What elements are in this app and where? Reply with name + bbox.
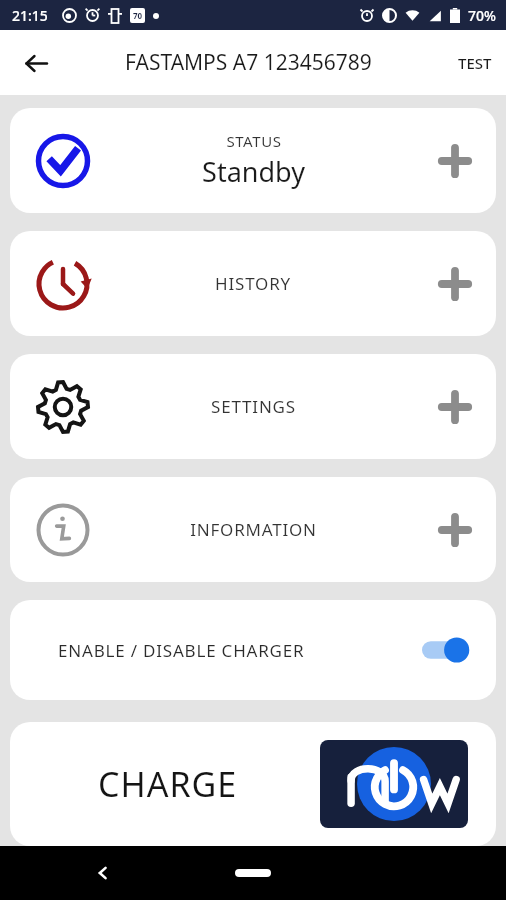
button[interactable]: Expand STATUS	[432, 138, 478, 184]
button[interactable]: Back	[80, 850, 126, 896]
button[interactable]: Back	[12, 39, 60, 87]
button[interactable]: Home	[218, 858, 288, 888]
button[interactable]: ENABLE / DISABLE CHARGER	[10, 600, 496, 700]
staticText: ENABLE / DISABLE CHARGER	[58, 639, 305, 662]
staticText: HISTORY	[215, 272, 291, 295]
button[interactable]: STATUS	[10, 108, 496, 213]
button[interactable]: SETTINGS	[10, 354, 496, 459]
staticText: 70%	[468, 6, 496, 25]
staticText: 70	[133, 10, 143, 21]
staticText: Standby	[202, 153, 305, 190]
staticText: INFORMATION	[190, 518, 317, 541]
button[interactable]: TEST	[444, 43, 506, 83]
button[interactable]: HISTORY	[10, 231, 496, 336]
button[interactable]: Expand SETTINGS	[432, 384, 478, 430]
button[interactable]: Expand INFORMATION	[432, 507, 478, 553]
staticText: STATUS	[226, 131, 282, 151]
button[interactable]: INFORMATION	[10, 477, 496, 582]
button[interactable]: Charge now	[320, 740, 468, 828]
button[interactable]: Enable or disable charger	[422, 633, 474, 667]
staticText: TEST	[458, 53, 492, 73]
staticText: FASTAMPS A7 123456789	[125, 48, 372, 77]
staticText: CHARGE	[98, 761, 238, 807]
staticText: 21:15	[12, 6, 48, 25]
button[interactable]: CHARGE	[10, 722, 496, 846]
staticText: SETTINGS	[211, 395, 296, 418]
button[interactable]: Expand HISTORY	[432, 261, 478, 307]
